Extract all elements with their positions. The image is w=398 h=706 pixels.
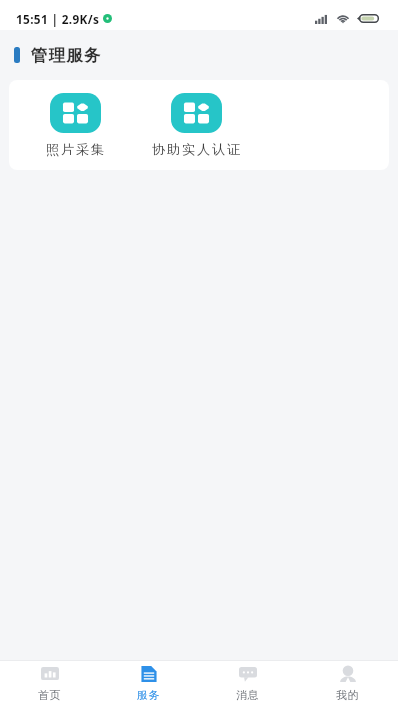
other: Profile xyxy=(339,666,357,682)
other: Messages xyxy=(239,666,257,682)
button[interactable]: Messages xyxy=(198,661,298,706)
button[interactable]: Home xyxy=(0,661,99,706)
staticText: 照片采集 xyxy=(46,141,106,158)
staticText: 服务 xyxy=(137,688,161,702)
staticText: 管理服务 xyxy=(31,45,103,65)
staticText: 15:51 | 2.9K/s xyxy=(16,11,100,27)
staticText: 首页 xyxy=(38,688,62,702)
staticText: 消息 xyxy=(236,688,260,702)
other: Services xyxy=(140,666,158,682)
other: Home xyxy=(41,666,59,682)
staticText: 协助实人认证 xyxy=(152,141,242,158)
button[interactable]: 协助实人认证 xyxy=(136,80,257,170)
button[interactable]: 照片采集 xyxy=(15,80,136,170)
staticText: 我的 xyxy=(336,688,360,702)
button[interactable]: Profile xyxy=(298,661,398,706)
button[interactable]: Services xyxy=(99,661,198,706)
